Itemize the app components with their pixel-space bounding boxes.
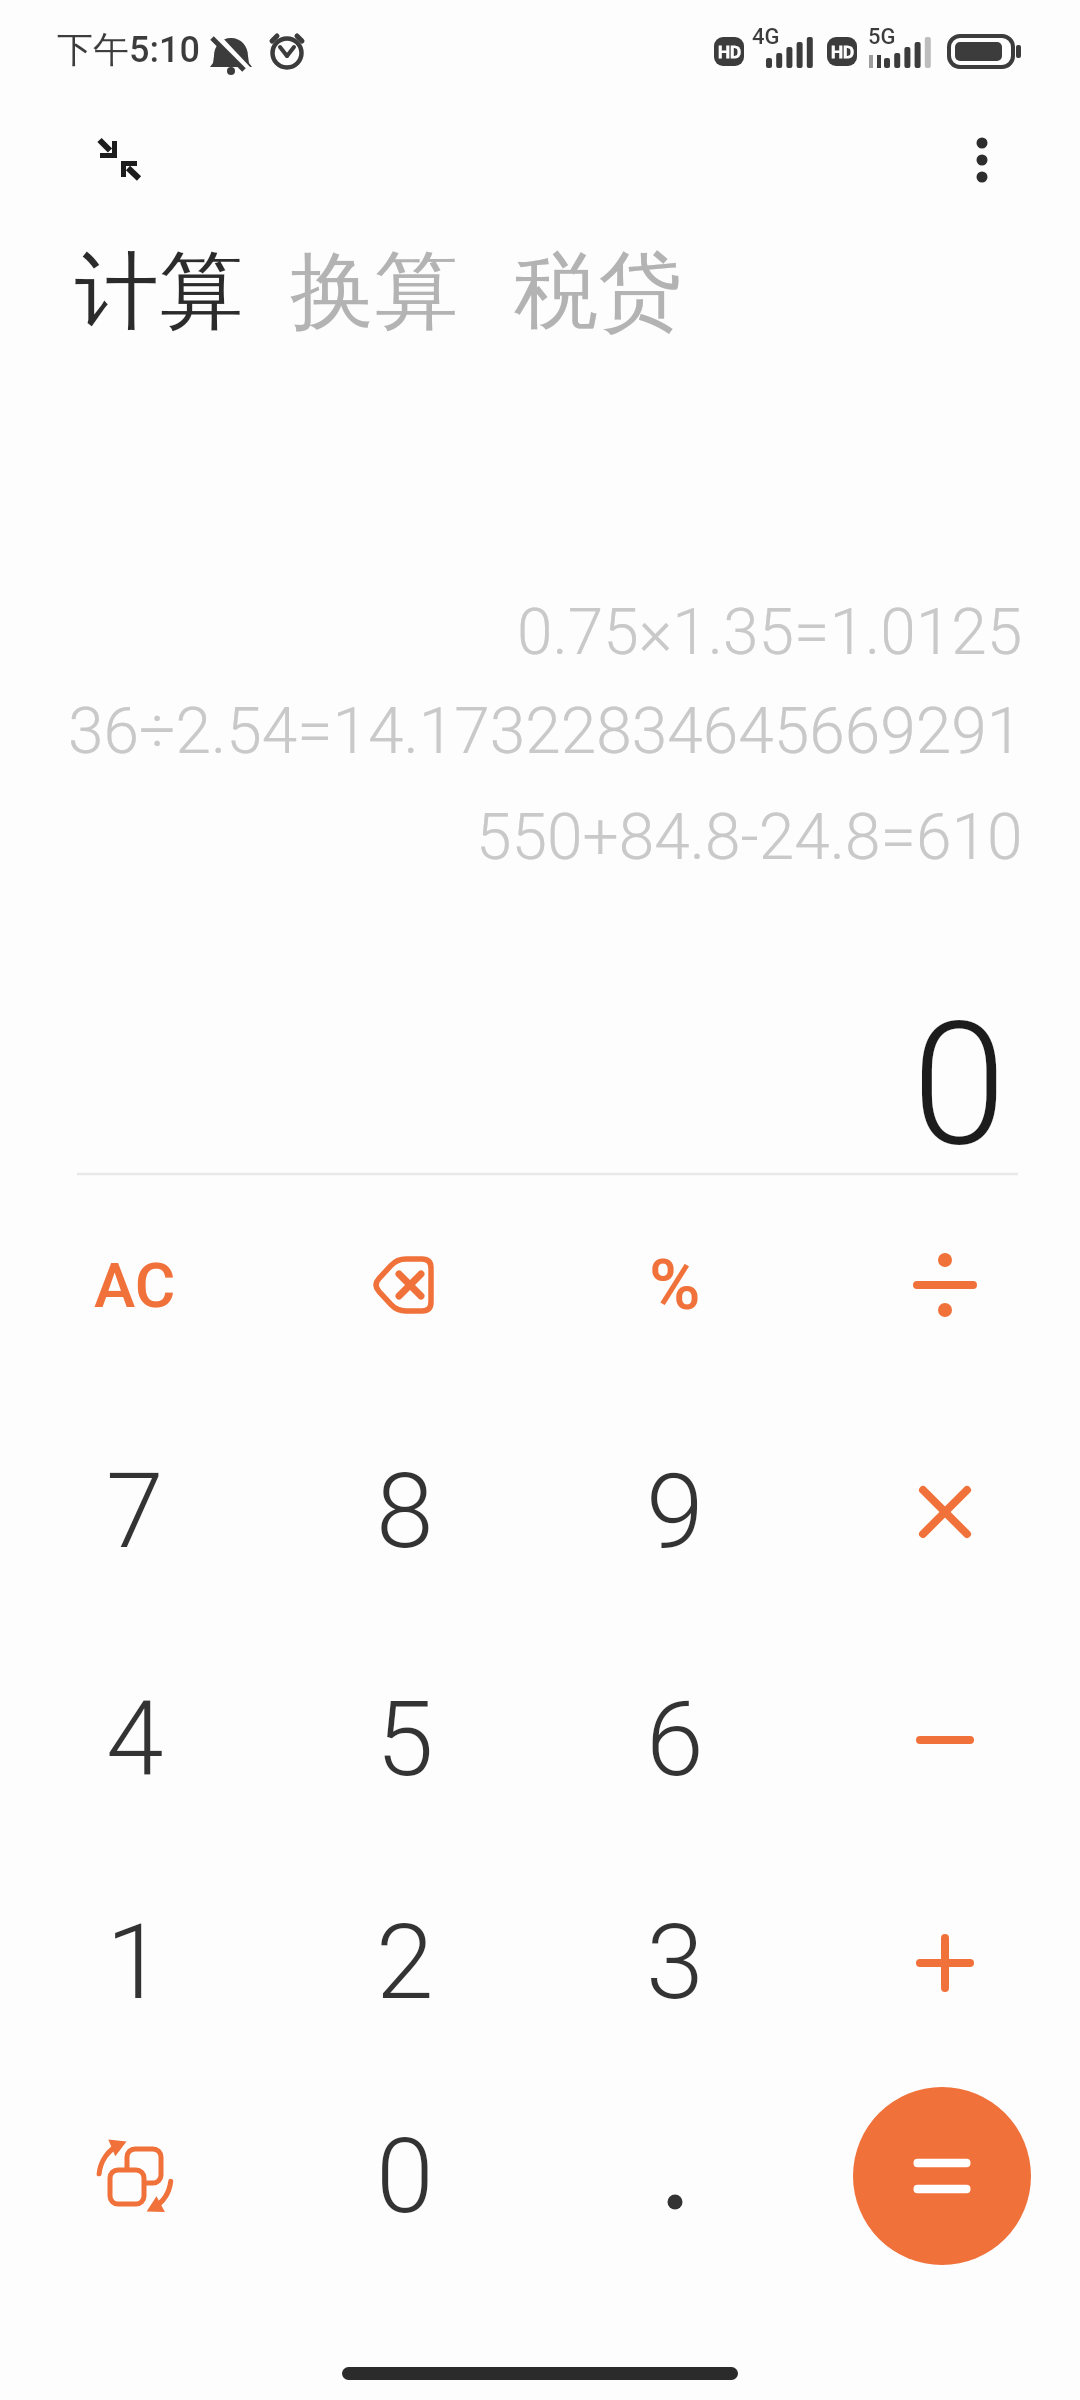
button[interactable]: 换算	[290, 239, 458, 345]
button[interactable]	[830, 1187, 1060, 1383]
staticText: 0	[912, 985, 1007, 1170]
staticText: 0	[376, 2116, 434, 2238]
button[interactable]: 5	[290, 1642, 520, 1838]
button[interactable]: 税贷	[514, 239, 682, 345]
staticText: 550+84.8-24.8=610	[476, 800, 1023, 870]
button[interactable]: 4	[20, 1642, 250, 1838]
button[interactable]: %	[560, 1187, 790, 1383]
staticText: %	[649, 1244, 701, 1326]
staticText: 3	[646, 1902, 704, 2024]
button[interactable]	[290, 1187, 520, 1383]
staticText: 4	[106, 1679, 164, 1801]
staticText: 下午5:10	[57, 27, 200, 72]
staticText: 5	[376, 1679, 434, 1801]
staticText: 6	[646, 1679, 704, 1801]
button[interactable]: 6	[560, 1642, 790, 1838]
button[interactable]	[830, 1642, 1060, 1838]
button[interactable]: 2	[290, 1865, 520, 2061]
button[interactable]: 9	[560, 1414, 790, 1610]
button[interactable]	[85, 125, 153, 193]
button[interactable]: 0	[290, 2079, 520, 2275]
staticText: 2	[376, 1902, 434, 2024]
button[interactable]	[560, 2079, 790, 2275]
staticText: 7	[106, 1451, 164, 1573]
button[interactable]	[853, 2087, 1031, 2265]
staticText: 4G	[752, 24, 780, 50]
button[interactable]: 1	[20, 1865, 250, 2061]
staticText: 9	[646, 1451, 704, 1573]
button[interactable]	[830, 1865, 1060, 2061]
button[interactable]: 7	[20, 1414, 250, 1610]
button[interactable]: 8	[290, 1414, 520, 1610]
button[interactable]	[952, 130, 1012, 190]
button[interactable]: 计算	[75, 239, 243, 345]
button[interactable]	[830, 1414, 1060, 1610]
staticText: 0.75×1.35=1.0125	[517, 595, 1023, 665]
button[interactable]: 3	[560, 1865, 790, 2061]
staticText: HD	[718, 42, 742, 62]
button[interactable]	[20, 2079, 250, 2275]
staticText: 36÷2.54=14.17322834645669291	[68, 694, 1023, 764]
staticText: AC	[94, 1249, 176, 1322]
staticText: 5G	[868, 24, 896, 50]
staticText: 8	[376, 1451, 434, 1573]
button[interactable]: AC	[20, 1187, 250, 1383]
staticText: 1	[106, 1902, 164, 2024]
staticText: HD	[831, 42, 855, 62]
